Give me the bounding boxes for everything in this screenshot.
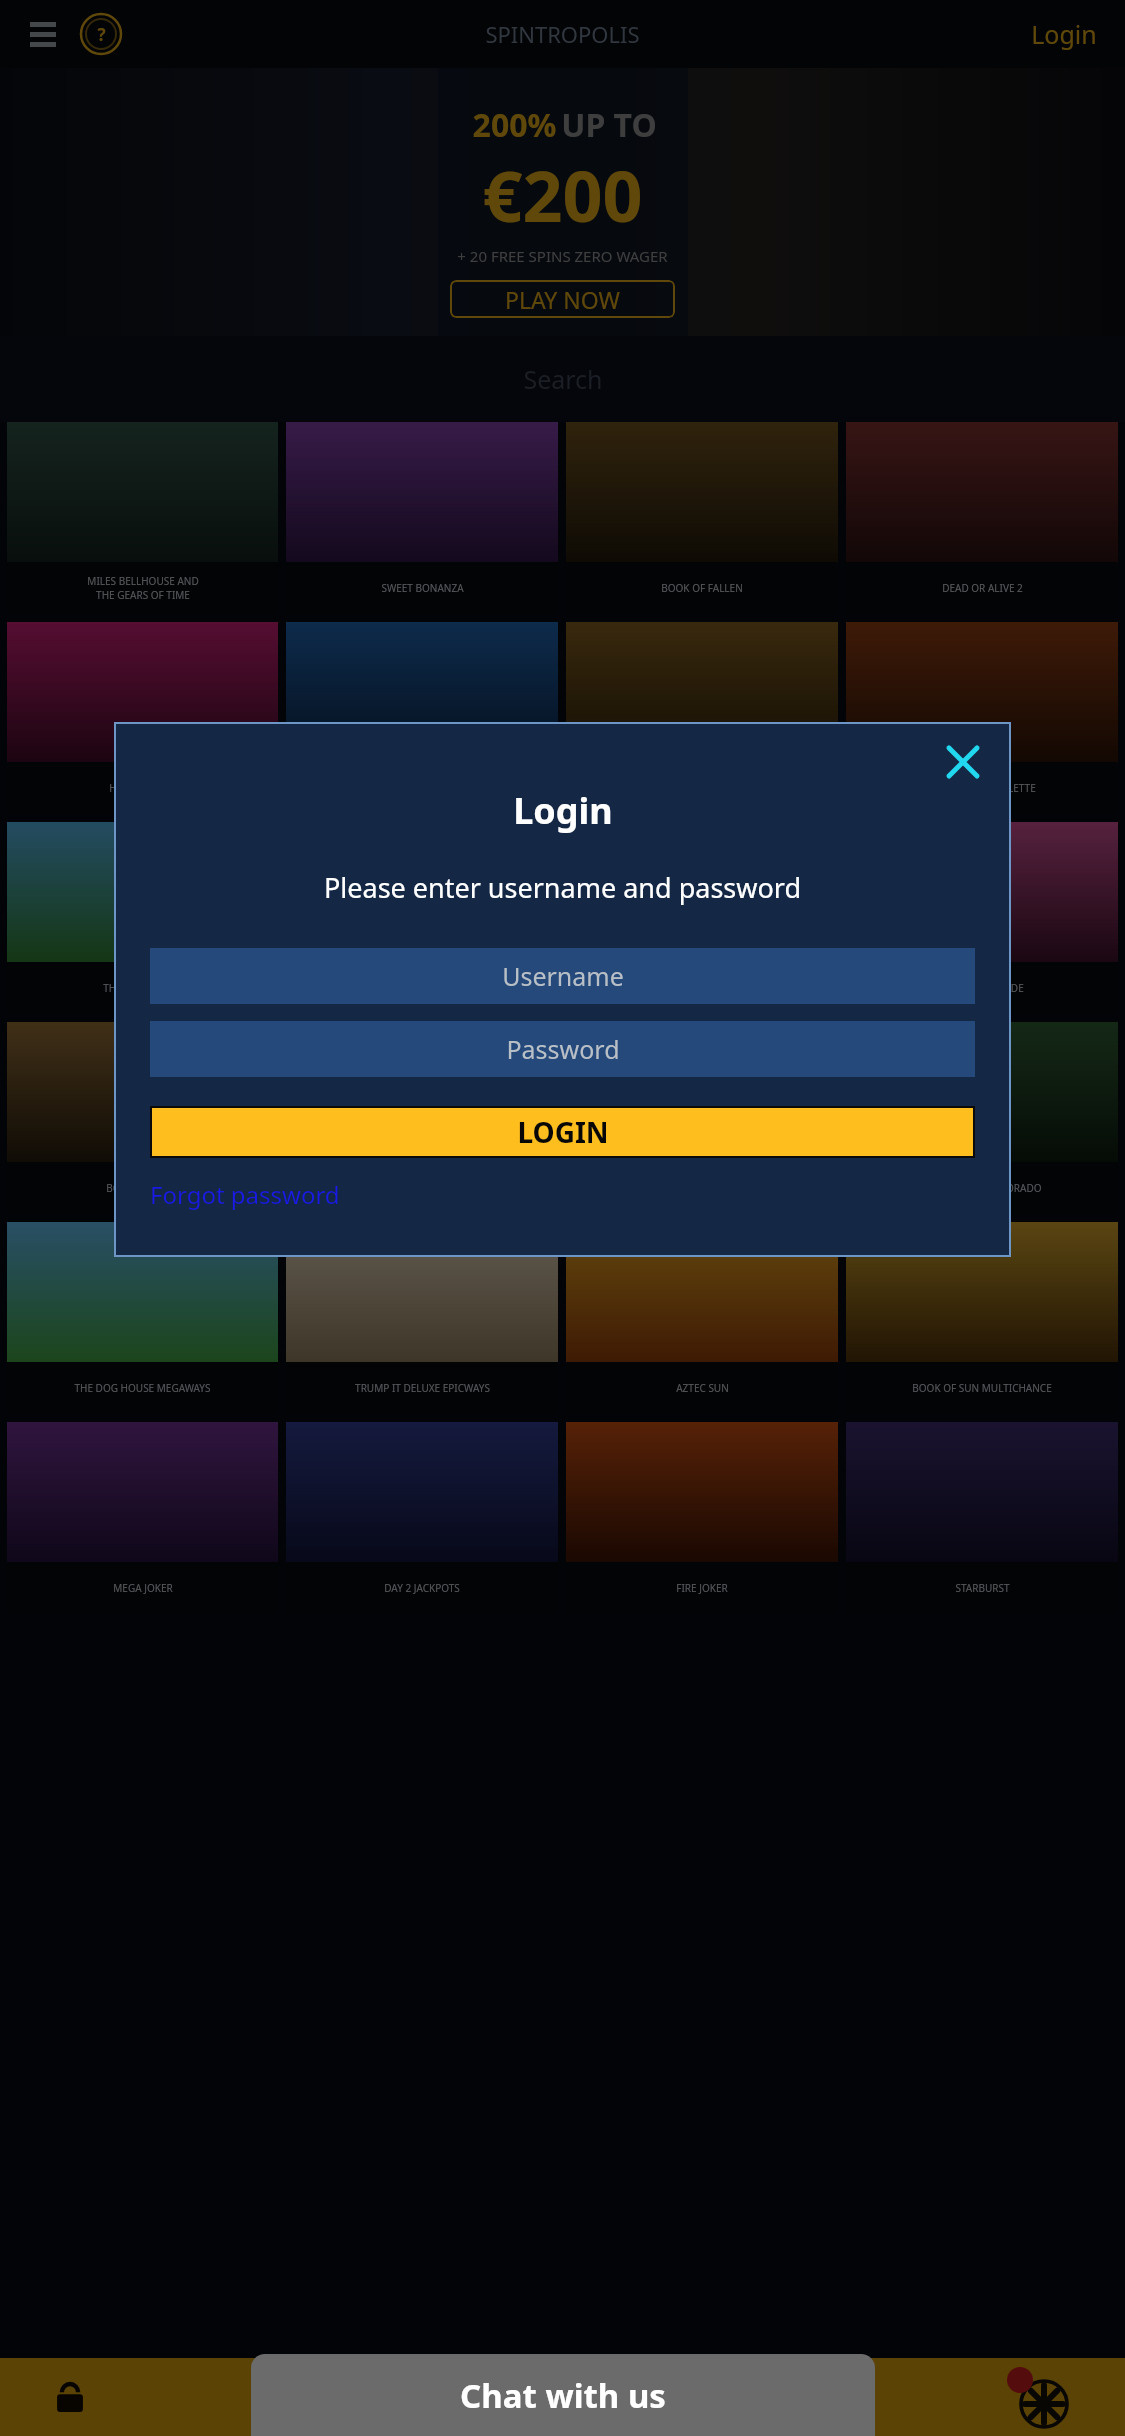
button[interactable]: THE DOG HOUSE MEGAWAYS — [7, 1222, 278, 1414]
button[interactable]: TRUMP IT DELUXE EPICWAYS — [286, 1222, 558, 1414]
button[interactable]: Password — [150, 1021, 975, 1077]
staticText: SWEET BONANZA — [381, 581, 464, 595]
staticText: LIGHTNING ROULETTE — [929, 781, 1036, 795]
button[interactable]: Help — [78, 11, 124, 57]
button[interactable]: Username — [150, 948, 975, 1004]
button[interactable]: FIRE JOKER — [566, 1422, 838, 1614]
staticText: Password — [506, 1032, 620, 1066]
button[interactable]: STARBURST — [846, 1422, 1118, 1614]
staticText: THE DOG HOUSE — [103, 981, 183, 995]
staticText: DEAD OR ALIVE 2 — [942, 581, 1023, 595]
button[interactable]: THE DOG HOUSE — [7, 822, 278, 1014]
button[interactable]: LOGIN — [152, 1108, 973, 1156]
button[interactable]: BOOK OF ATEM — [7, 1022, 278, 1214]
button[interactable]: SPINATA GRANDE — [846, 822, 1118, 1014]
button[interactable]: LIGHTNING ROULETTE — [846, 622, 1118, 814]
staticText: MILES BELLHOUSE AND THE GEARS OF TIME — [87, 574, 199, 602]
button[interactable]: PLAY NOW — [450, 280, 675, 318]
button[interactable]: Menu — [20, 11, 66, 57]
staticText: FIRE JOKER — [676, 1581, 728, 1595]
button[interactable]: FRUIT PARTY — [566, 822, 838, 1014]
staticText: HOT TO BURN — [109, 781, 176, 795]
staticText: PLAY NOW — [505, 284, 620, 315]
staticText: €200 — [482, 147, 643, 242]
button[interactable]: Wheel of fortune — [1007, 2367, 1067, 2427]
staticText: BOOK OF SUN MULTICHANCE — [912, 1381, 1052, 1395]
button[interactable]: Chat with us — [251, 2354, 875, 2436]
staticText: STARBURST — [955, 1581, 1010, 1595]
button[interactable]: GATES OF OLYMPUS — [566, 622, 838, 814]
staticText: LOGIN — [517, 1113, 609, 1151]
button[interactable]: Secure — [44, 2371, 96, 2423]
staticText: Login — [1031, 17, 1097, 51]
staticText: Please enter username and password — [150, 869, 975, 906]
staticText: BOOK OF ATEM — [106, 1181, 179, 1195]
staticText: THE DOG HOUSE MEGAWAYS — [74, 1381, 211, 1395]
button[interactable]: JUNGLE JIM - EL DORADO — [846, 1022, 1118, 1214]
staticText: SPINTROPOLIS — [485, 19, 640, 49]
button[interactable]: WOLF GOLD — [286, 822, 558, 1014]
staticText: AZTEC SUN — [676, 1381, 729, 1395]
staticText: UP TO — [561, 103, 657, 147]
staticText: Login — [513, 786, 613, 835]
staticText: Username — [502, 959, 624, 993]
button[interactable]: SWEET BONANZA — [286, 422, 558, 614]
staticText: TRUMP IT DELUXE EPICWAYS — [355, 1381, 490, 1395]
staticText: + 20 FREE SPINS ZERO WAGER — [457, 246, 668, 266]
button[interactable]: HOT TO BURN — [7, 622, 278, 814]
staticText: DAY 2 JACKPOTS — [384, 1581, 460, 1595]
staticText: SPINATA GRANDE — [941, 981, 1024, 995]
button[interactable]: BIG BASS BONANZA — [286, 622, 558, 814]
staticText: Search — [523, 362, 603, 396]
staticText: Chat with us — [460, 2373, 666, 2418]
staticText: Forgot password — [150, 1178, 340, 1211]
button[interactable]: AZTEC SUN — [566, 1222, 838, 1414]
button[interactable]: DAY 2 JACKPOTS — [286, 1422, 558, 1614]
button[interactable]: Login — [1025, 11, 1103, 57]
staticText: JUNGLE JIM - EL DORADO — [923, 1181, 1042, 1195]
button[interactable]: MILES BELLHOUSE AND THE GEARS OF TIME — [7, 422, 278, 614]
staticText: BOOK OF FALLEN — [661, 581, 743, 595]
button[interactable]: BOOK OF FALLEN — [566, 422, 838, 614]
button[interactable]: MEGA JOKER — [7, 1422, 278, 1614]
button[interactable]: BOOK OF SUN MULTICHANCE — [846, 1222, 1118, 1414]
button[interactable]: Close — [937, 736, 989, 788]
button[interactable]: Forgot password — [150, 1178, 340, 1211]
staticText: ? — [97, 23, 106, 46]
button[interactable]: SUN OF EGYPT — [566, 1022, 838, 1214]
staticText: 200% — [468, 103, 561, 147]
button[interactable]: JOHN HUNTER TOMB OF THE SCARAB QUEEN — [286, 1022, 558, 1214]
staticText: MEGA JOKER — [113, 1581, 173, 1595]
button[interactable]: DEAD OR ALIVE 2 — [846, 422, 1118, 614]
